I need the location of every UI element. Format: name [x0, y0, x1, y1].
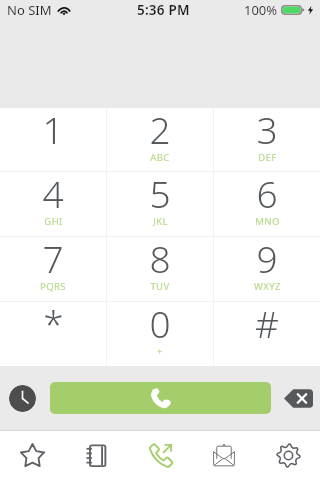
- button[interactable]: 0: [107, 302, 213, 366]
- staticText: 7: [42, 233, 64, 283]
- staticText: 4: [42, 168, 64, 218]
- staticText: GHI: [44, 215, 63, 228]
- staticText: 5:36 PM: [137, 1, 190, 19]
- button[interactable]: Recents: [9, 385, 36, 412]
- staticText: No SIM: [7, 1, 52, 19]
- staticText: 5: [149, 168, 171, 218]
- staticText: *: [43, 298, 64, 348]
- button[interactable]: 1: [0, 108, 106, 171]
- staticText: MNO: [255, 215, 280, 228]
- staticText: 9: [256, 233, 278, 283]
- staticText: WXYZ: [254, 280, 281, 293]
- button[interactable]: *: [0, 302, 106, 366]
- staticText: 3: [256, 104, 278, 154]
- staticText: +: [157, 345, 163, 358]
- button[interactable]: Settings: [256, 431, 320, 480]
- button[interactable]: Contacts: [64, 431, 128, 480]
- staticText: JKL: [153, 215, 168, 228]
- button[interactable]: Favorites: [0, 431, 64, 480]
- button[interactable]: 3: [214, 108, 320, 171]
- staticText: #: [255, 298, 279, 348]
- staticText: 1: [42, 104, 64, 154]
- staticText: 6: [256, 168, 278, 218]
- staticText: TUV: [150, 280, 170, 293]
- button[interactable]: Messages: [192, 431, 256, 480]
- staticText: 8: [149, 233, 171, 283]
- button[interactable]: 9: [214, 237, 320, 301]
- button[interactable]: Keypad: [128, 431, 192, 480]
- button[interactable]: Delete: [284, 388, 313, 409]
- button[interactable]: Call: [50, 382, 271, 414]
- button[interactable]: 4: [0, 172, 106, 236]
- staticText: 100%: [244, 1, 278, 19]
- button[interactable]: 2: [107, 108, 213, 171]
- button[interactable]: 7: [0, 237, 106, 301]
- staticText: 2: [149, 104, 171, 154]
- button[interactable]: 8: [107, 237, 213, 301]
- staticText: ABC: [150, 151, 170, 164]
- staticText: 0: [149, 298, 171, 348]
- staticText: PQRS: [40, 280, 66, 293]
- button[interactable]: #: [214, 302, 320, 366]
- button[interactable]: 5: [107, 172, 213, 236]
- button[interactable]: 6: [214, 172, 320, 236]
- staticText: DEF: [258, 151, 277, 164]
